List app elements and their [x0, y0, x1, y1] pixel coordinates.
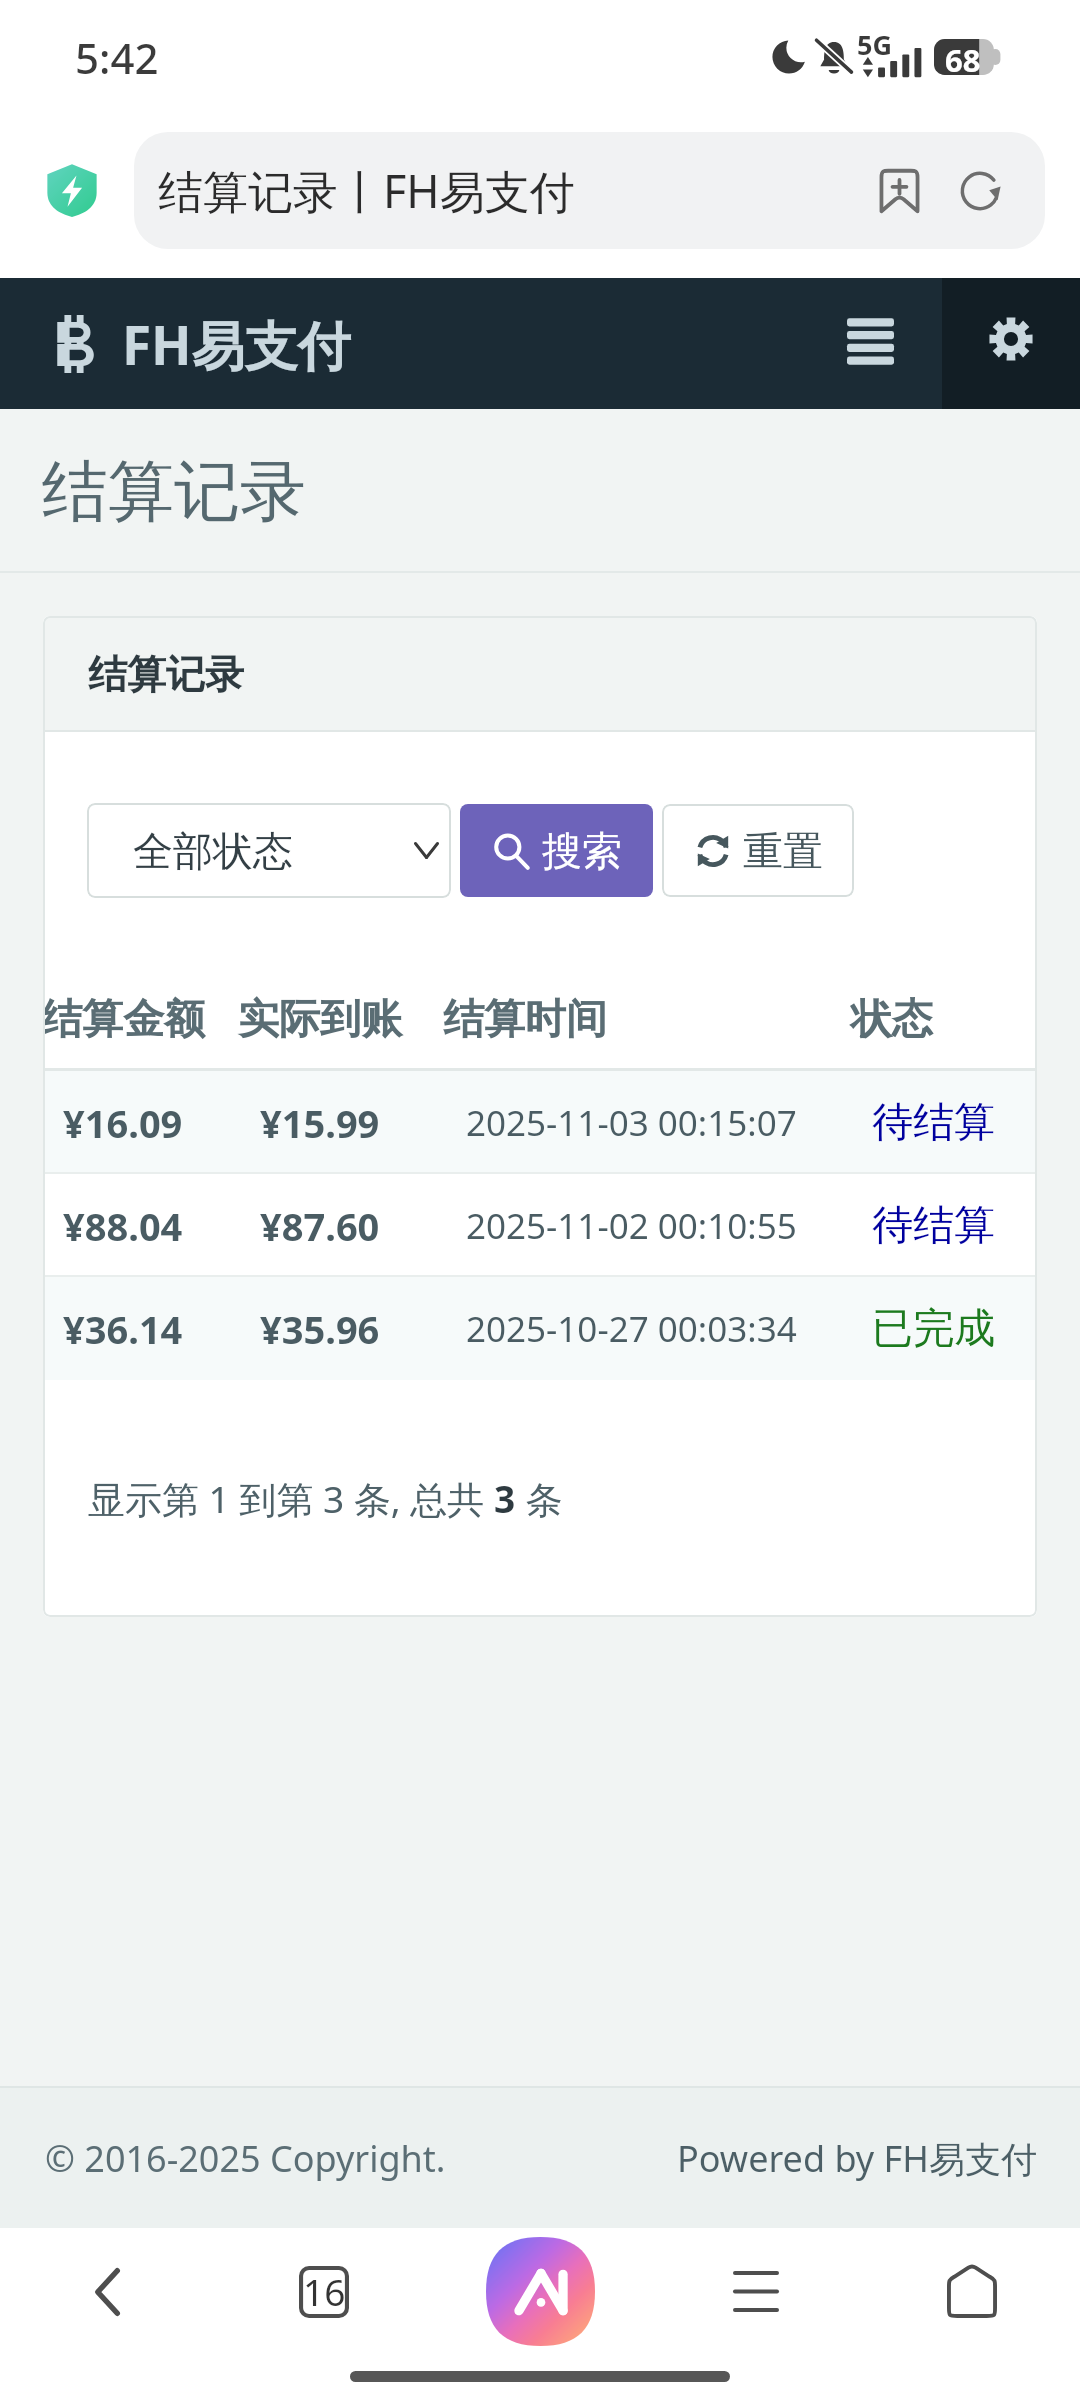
staticText: 5:42 [75, 29, 159, 86]
button[interactable]: Add bookmark [866, 158, 932, 224]
staticText: 待结算 [872, 1200, 995, 1252]
staticText: 条 [516, 1473, 563, 1524]
staticText: 2025-10-27 00:03:34 [466, 1305, 797, 1353]
button[interactable]: 搜索 [460, 804, 653, 897]
staticText: 结算金额 [43, 994, 205, 1046]
staticText: 结算记录丨FH易支付 [158, 160, 575, 221]
button[interactable]: FH易支付 [52, 308, 351, 380]
staticText: Powered by FH易支付 [677, 2134, 1037, 2183]
staticText: 全部状态 [133, 826, 293, 876]
staticText: ¥35.96 [260, 1303, 380, 1355]
button[interactable]: Tabs [216, 2228, 432, 2355]
button[interactable]: Menu [847, 278, 942, 409]
staticText: 结算记录 [88, 650, 244, 699]
staticText: 状态 [851, 994, 933, 1046]
button[interactable]: Recent apps [648, 2228, 864, 2355]
staticText: 重置 [743, 826, 823, 876]
staticText: 2025-11-02 00:10:55 [466, 1202, 797, 1250]
staticText: 已完成 [872, 1303, 995, 1355]
staticText: 16 [303, 2266, 346, 2316]
staticText: ¥15.99 [260, 1097, 380, 1149]
button[interactable]: ¥16.09 [43, 1071, 1037, 1174]
staticText: 5G [857, 26, 892, 63]
staticText: 显示第 1 到第 3 条, 总共 [88, 1473, 494, 1524]
staticText: 2025-11-03 00:15:07 [466, 1099, 797, 1147]
staticText: ¥16.09 [63, 1097, 183, 1149]
button[interactable]: 全部状态 [87, 803, 451, 898]
staticText: ¥88.04 [63, 1200, 183, 1252]
button[interactable]: ¥36.14 [43, 1277, 1037, 1380]
staticText: 实际到账 [238, 994, 402, 1046]
staticText: 3 [494, 1473, 516, 1523]
staticText: © 2016-2025 Copyright. [45, 2134, 446, 2183]
staticText: FH易支付 [122, 308, 351, 380]
button[interactable]: Back [0, 2228, 216, 2355]
staticText: 待结算 [872, 1097, 995, 1149]
button[interactable]: ¥88.04 [43, 1174, 1037, 1277]
staticText: ¥87.60 [260, 1200, 380, 1252]
staticText: ¥36.14 [63, 1303, 183, 1355]
button[interactable]: Reload page [947, 158, 1013, 224]
staticText: 结算时间 [443, 994, 607, 1046]
button[interactable]: Home [864, 2228, 1080, 2355]
staticText: 结算记录 [42, 450, 306, 533]
other: Site security [44, 162, 100, 218]
button[interactable]: 结算记录丨FH易支付 [134, 132, 1045, 249]
button[interactable]: Settings [942, 278, 1080, 409]
button[interactable]: AI assistant [432, 2228, 648, 2355]
button[interactable]: 重置 [662, 804, 854, 897]
staticText: 68 [945, 39, 981, 75]
staticText: 搜索 [542, 826, 622, 876]
